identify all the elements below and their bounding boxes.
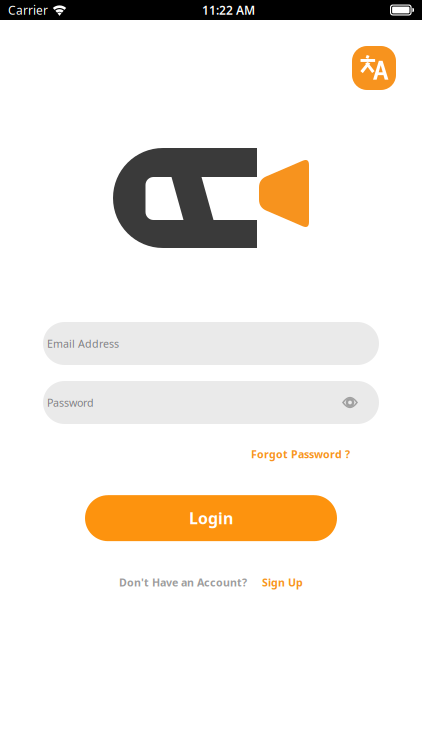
staticText: Login: [189, 507, 233, 529]
button[interactable]: Forgot Password ?: [251, 447, 350, 461]
staticText: Carrier: [8, 2, 48, 18]
button[interactable]: Sign Up: [262, 575, 303, 589]
staticText: Don't Have an Account?: [119, 575, 247, 589]
button[interactable]: Password: [43, 381, 379, 424]
staticText: Sign Up: [262, 575, 303, 589]
staticText: Forgot Password ?: [251, 447, 350, 461]
button[interactable]: Login: [85, 495, 337, 541]
staticText: 11:22 AM: [202, 2, 255, 18]
button[interactable]: Email Address: [43, 322, 379, 365]
button[interactable]: Translate: [352, 46, 396, 90]
staticText: Email Address: [47, 336, 119, 351]
staticText: Password: [47, 395, 94, 410]
